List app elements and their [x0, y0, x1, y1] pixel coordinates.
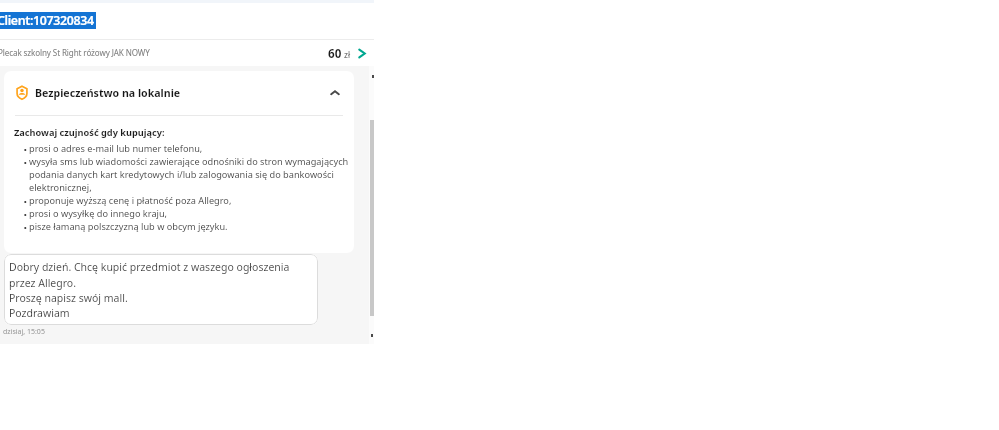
- staticText: Bezpieczeństwo na lokalnie: [35, 86, 181, 100]
- staticText: prosi o adres e-mail lub numer telefonu,: [29, 142, 203, 155]
- button[interactable]: Bezpieczeństwo na lokalnie: [4, 71, 354, 115]
- button[interactable]: Dobry dzień. Chcę kupić przedmiot z wasz…: [4, 254, 318, 325]
- staticText: pisze łamaną polszczyzną lub w obcym jęz…: [29, 220, 228, 233]
- staticText: wysyła sms lub wiadomości zawierające od…: [29, 155, 353, 194]
- other: Collapse: [329, 87, 341, 99]
- staticText: 60: [328, 46, 342, 62]
- other: Open offer: [358, 49, 366, 58]
- staticText: prosi o wysyłkę do innego kraju,: [29, 207, 168, 220]
- button[interactable]: Plecak szkolny St Right różowy JAK NOWY: [0, 41, 374, 67]
- staticText: Client:107320834: [0, 12, 94, 29]
- staticText: Plecak szkolny St Right różowy JAK NOWY: [0, 47, 150, 58]
- staticText: dzisiaj, 15:05: [3, 327, 45, 337]
- staticText: proponuje wyższą cenę i płatność poza Al…: [29, 194, 232, 207]
- staticText: zł: [344, 49, 351, 60]
- staticText: Zachowaj czujność gdy kupujący:: [14, 126, 165, 139]
- staticText: Dobry dzień. Chcę kupić przedmiot z wasz…: [9, 260, 290, 320]
